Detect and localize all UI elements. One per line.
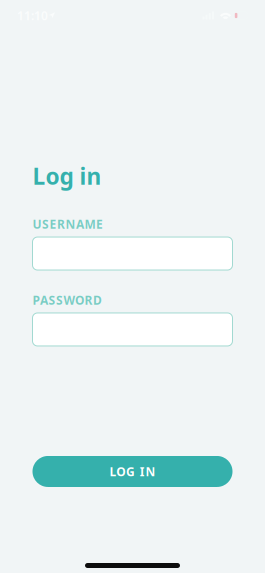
staticText: Log in (32, 161, 101, 191)
button[interactable]: Password (32, 313, 232, 346)
button[interactable]: Username (32, 237, 232, 270)
button[interactable]: LOG IN (32, 456, 232, 487)
staticText: USERNAME (32, 216, 103, 232)
staticText: LOG IN (109, 463, 155, 479)
staticText: PASSWORD (32, 292, 102, 308)
